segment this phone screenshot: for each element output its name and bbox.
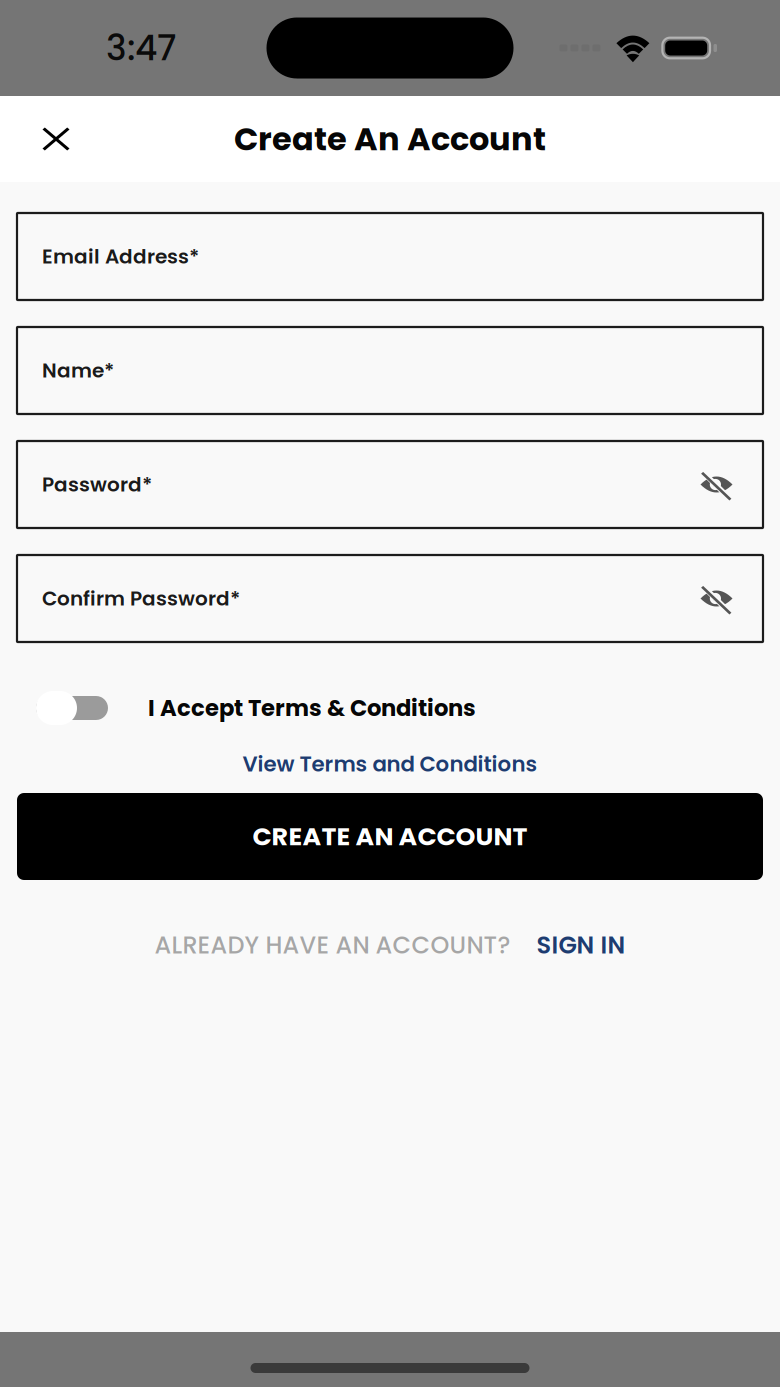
staticText: CREATE AN ACCOUNT (252, 819, 527, 854)
button[interactable]: Close (14, 96, 98, 182)
button[interactable]: Name* (17, 327, 763, 414)
staticText: Confirm Password* (42, 584, 240, 612)
staticText: View Terms and Conditions (242, 749, 537, 779)
staticText: Password* (42, 470, 152, 498)
staticText: Email Address* (42, 242, 199, 270)
button[interactable]: SIGN IN (536, 928, 625, 962)
staticText: ALREADY HAVE AN ACCOUNT? (154, 928, 510, 962)
button[interactable]: View Terms and Conditions (17, 747, 763, 781)
staticText: Name* (42, 356, 114, 384)
staticText: SIGN IN (536, 928, 625, 962)
button[interactable]: CREATE AN ACCOUNT (17, 793, 763, 880)
button[interactable]: Email Address* (17, 213, 763, 300)
button[interactable]: Password* (17, 441, 763, 528)
button[interactable]: Accept Terms and Conditions (17, 688, 148, 728)
button[interactable]: Confirm Password* (17, 555, 763, 642)
staticText: Create An Account (234, 117, 546, 161)
staticText: 3:47 (106, 24, 176, 72)
staticText: I Accept Terms & Conditions (148, 692, 476, 724)
